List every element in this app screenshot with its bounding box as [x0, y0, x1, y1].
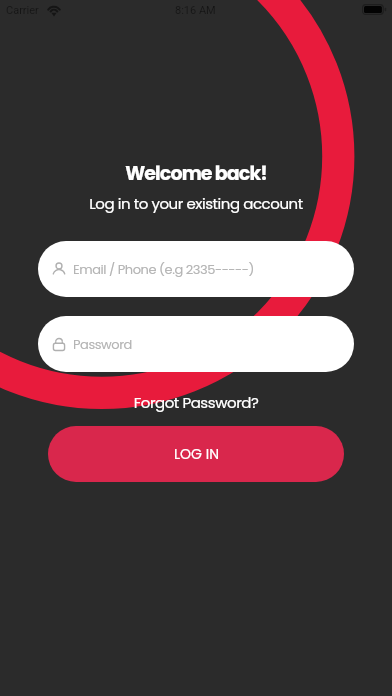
- staticText: 8:16 AM: [175, 4, 216, 17]
- other: Email or phone: [50, 260, 68, 278]
- staticText: Carrier: [6, 4, 39, 17]
- button[interactable]: Password: [38, 316, 354, 372]
- other: Wi-Fi: [47, 4, 61, 15]
- staticText: Welcome back!: [0, 160, 392, 187]
- staticText: Log in to your existing account: [0, 193, 392, 214]
- other: Password: [50, 335, 68, 353]
- button[interactable]: Email or phone: [38, 241, 354, 297]
- staticText: Password: [73, 335, 132, 353]
- staticText: Email / Phone (e.g 2335-----): [73, 260, 254, 278]
- staticText: LOG IN: [174, 444, 219, 464]
- other: Battery: [362, 4, 387, 15]
- button[interactable]: Forgot Password?: [0, 392, 392, 413]
- button[interactable]: LOG IN: [48, 426, 344, 482]
